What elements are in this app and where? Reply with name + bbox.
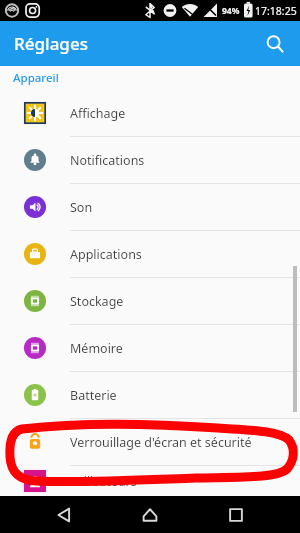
button[interactable]: Batterie (0, 372, 300, 418)
staticText: Mémoire (70, 340, 123, 357)
button[interactable]: Utilisateurs (0, 466, 300, 496)
button[interactable]: Retour (42, 496, 86, 533)
staticText: Applications (70, 246, 142, 263)
button[interactable]: Notifications (0, 137, 300, 183)
button[interactable]: Applications (0, 231, 300, 277)
staticText: Réglages (14, 32, 88, 55)
button[interactable]: Accueil (128, 496, 172, 533)
staticText: Verrouillage d'écran et sécurité (70, 434, 252, 451)
staticText: Notifications (70, 152, 145, 169)
button[interactable]: Son (0, 184, 300, 230)
staticText: Affichage (70, 105, 126, 122)
staticText: 94% (222, 5, 240, 17)
button[interactable]: Mémoire (0, 325, 300, 371)
staticText: Son (70, 199, 93, 216)
staticText: Appareil (13, 70, 59, 86)
button[interactable]: Verrouillage d'écran et sécurité (0, 419, 300, 465)
staticText: Stockage (70, 293, 124, 310)
staticText: Batterie (70, 387, 117, 404)
staticText: Utilisateurs (70, 473, 137, 490)
button[interactable]: Affichage (0, 90, 300, 136)
button[interactable]: Applications récentes (214, 496, 258, 533)
button[interactable]: Stockage (0, 278, 300, 324)
staticText: 17:18:25 (255, 4, 297, 18)
button[interactable]: Rechercher (256, 25, 294, 63)
